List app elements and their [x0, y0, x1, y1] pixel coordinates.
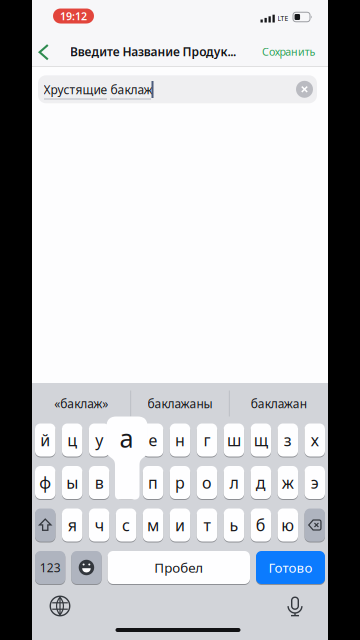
- button[interactable]: ю: [278, 508, 298, 541]
- staticText: и: [175, 514, 185, 536]
- staticText: ь: [229, 514, 238, 536]
- staticText: баклажан: [251, 395, 307, 411]
- button[interactable]: ж: [278, 466, 298, 499]
- staticText: л: [229, 472, 238, 493]
- button[interactable]: я: [62, 508, 82, 541]
- staticText: а: [119, 421, 133, 455]
- button[interactable]: о: [197, 466, 217, 499]
- button[interactable]: б: [251, 508, 271, 541]
- staticText: э: [311, 472, 319, 493]
- staticText: 19:12: [60, 9, 87, 23]
- button[interactable]: ч: [89, 508, 109, 541]
- button[interactable]: 123: [35, 551, 65, 584]
- staticText: е: [148, 429, 157, 451]
- staticText: о: [202, 472, 212, 493]
- button[interactable]: «баклаж»: [33, 384, 129, 422]
- staticText: Сохранить: [262, 44, 315, 59]
- button[interactable]: н: [170, 423, 190, 456]
- button[interactable]: [71, 551, 102, 584]
- staticText: т: [203, 514, 210, 536]
- button[interactable]: ь: [224, 508, 244, 541]
- button[interactable]: баклажаны: [132, 384, 228, 422]
- button[interactable]: ш: [224, 423, 244, 456]
- button[interactable]: к: [116, 423, 136, 456]
- button[interactable]: г: [197, 423, 217, 456]
- button[interactable]: щ: [251, 423, 271, 456]
- staticText: к: [122, 429, 130, 451]
- staticText: Введите Название Продук...: [70, 43, 236, 59]
- staticText: Готово: [268, 559, 312, 576]
- staticText: н: [175, 429, 185, 451]
- staticText: м: [147, 514, 159, 536]
- staticText: г: [203, 429, 210, 451]
- button[interactable]: л: [224, 466, 244, 499]
- staticText: й: [40, 429, 50, 451]
- button[interactable]: й: [35, 423, 55, 456]
- staticText: у: [95, 429, 103, 451]
- button[interactable]: [35, 508, 55, 541]
- staticText: я: [68, 514, 77, 536]
- button[interactable]: у: [89, 423, 109, 456]
- button[interactable]: Готово: [256, 551, 325, 584]
- button[interactable]: Сохранить: [231, 36, 315, 66]
- staticText: ф: [39, 472, 51, 493]
- staticText: LTE: [277, 14, 288, 23]
- button[interactable]: в: [89, 466, 109, 499]
- staticText: ц: [67, 429, 77, 451]
- button[interactable]: ы: [62, 466, 82, 499]
- button[interactable]: т: [197, 508, 217, 541]
- staticText: б: [256, 514, 266, 536]
- button[interactable]: Пробел: [108, 551, 250, 584]
- button[interactable]: ц: [62, 423, 82, 456]
- button[interactable]: х: [304, 423, 325, 456]
- staticText: ш: [227, 429, 241, 451]
- staticText: с: [122, 514, 130, 536]
- button[interactable]: [304, 508, 325, 541]
- staticText: п: [148, 472, 158, 493]
- button[interactable]: э: [304, 466, 325, 499]
- button[interactable]: п: [143, 466, 163, 499]
- staticText: р: [175, 472, 185, 493]
- button[interactable]: з: [278, 423, 298, 456]
- staticText: щ: [254, 429, 268, 451]
- button[interactable]: ф: [35, 466, 55, 499]
- button[interactable]: [32, 42, 52, 62]
- staticText: ж: [282, 472, 294, 493]
- staticText: «баклаж»: [54, 395, 108, 411]
- staticText: з: [284, 429, 292, 451]
- staticText: в: [95, 472, 104, 493]
- button[interactable]: с: [116, 508, 136, 541]
- staticText: х: [311, 429, 319, 451]
- button[interactable]: баклажан: [231, 384, 327, 422]
- staticText: 123: [40, 559, 61, 575]
- staticText: ч: [95, 514, 104, 536]
- staticText: баклажаны: [147, 395, 212, 411]
- staticText: ы: [66, 472, 78, 493]
- button[interactable]: е: [143, 423, 163, 456]
- button[interactable]: [284, 596, 305, 617]
- button[interactable]: [49, 595, 70, 616]
- button[interactable]: м: [143, 508, 163, 541]
- staticText: Хрустящие баклаж: [43, 81, 152, 97]
- staticText: д: [256, 472, 266, 493]
- button[interactable]: [296, 81, 313, 98]
- button[interactable]: [38, 75, 317, 103]
- button[interactable]: р: [170, 466, 190, 499]
- button[interactable]: д: [251, 466, 271, 499]
- staticText: ю: [281, 514, 294, 536]
- button[interactable]: и: [170, 508, 190, 541]
- staticText: Пробел: [154, 559, 203, 576]
